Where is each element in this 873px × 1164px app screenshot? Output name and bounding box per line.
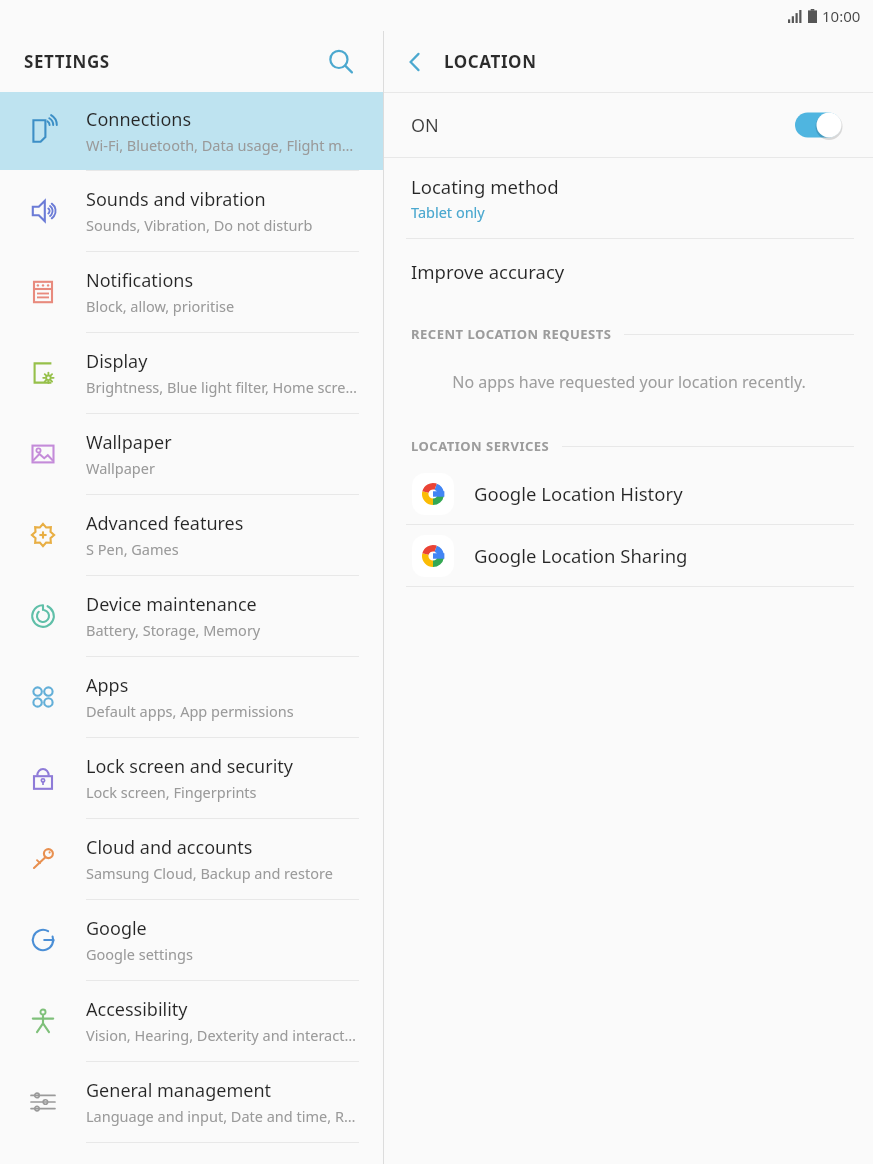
staticText: Notifications bbox=[86, 268, 194, 293]
button[interactable]: Locating method bbox=[384, 158, 873, 238]
button[interactable]: Google Location Sharing bbox=[384, 525, 873, 586]
button[interactable]: Wallpaper bbox=[0, 414, 383, 494]
button[interactable]: ON bbox=[384, 93, 873, 157]
staticText: LOCATION SERVICES bbox=[411, 437, 550, 455]
staticText: Accessibility bbox=[86, 997, 188, 1022]
staticText: Sounds, Vibration, Do not disturb bbox=[86, 215, 313, 235]
staticText: Locating method bbox=[411, 174, 559, 199]
button[interactable]: Apps bbox=[0, 657, 383, 737]
staticText: Lock screen, Fingerprints bbox=[86, 782, 257, 802]
staticText: Lock screen and security bbox=[86, 754, 293, 779]
button[interactable]: Google bbox=[0, 900, 383, 980]
staticText: Advanced features bbox=[86, 511, 244, 536]
button[interactable]: Advanced features bbox=[0, 495, 383, 575]
button[interactable]: Improve accuracy bbox=[384, 239, 873, 303]
staticText: Connections bbox=[86, 107, 192, 132]
staticText: Wi-Fi, Bluetooth, Data usage, Flight mod… bbox=[86, 135, 359, 155]
button[interactable]: Accessibility bbox=[0, 981, 383, 1061]
staticText: LOCATION bbox=[444, 50, 537, 73]
button[interactable]: Back bbox=[392, 39, 438, 85]
staticText: Samsung Cloud, Backup and restore bbox=[86, 863, 333, 883]
button[interactable]: Display bbox=[0, 333, 383, 413]
staticText: General management bbox=[86, 1078, 272, 1103]
button[interactable]: Google Location History bbox=[384, 463, 873, 524]
button[interactable]: Search bbox=[319, 40, 363, 84]
staticText: Sounds and vibration bbox=[86, 187, 266, 212]
staticText: Block, allow, prioritise bbox=[86, 296, 235, 316]
staticText: Google Location Sharing bbox=[474, 543, 688, 568]
staticText: Wallpaper bbox=[86, 458, 155, 478]
button[interactable]: Cloud and accounts bbox=[0, 819, 383, 899]
staticText: Brightness, Blue light filter, Home scre… bbox=[86, 377, 359, 397]
staticText: Language and input, Date and time, Res… bbox=[86, 1106, 359, 1126]
button[interactable]: Sounds and vibration bbox=[0, 171, 383, 251]
staticText: Default apps, App permissions bbox=[86, 701, 294, 721]
staticText: Wallpaper bbox=[86, 430, 172, 455]
staticText: Tablet only bbox=[411, 202, 485, 222]
staticText: Battery, Storage, Memory bbox=[86, 620, 261, 640]
staticText: Vision, Hearing, Dexterity and interacti… bbox=[86, 1025, 359, 1045]
button[interactable]: Notifications bbox=[0, 252, 383, 332]
button[interactable]: Lock screen and security bbox=[0, 738, 383, 818]
staticText: SETTINGS bbox=[24, 50, 110, 73]
staticText: 10:00 bbox=[822, 6, 861, 26]
staticText: Cloud and accounts bbox=[86, 835, 253, 860]
staticText: ON bbox=[411, 113, 439, 138]
staticText: RECENT LOCATION REQUESTS bbox=[411, 325, 612, 343]
staticText: Device maintenance bbox=[86, 592, 257, 617]
button[interactable]: General management bbox=[0, 1062, 383, 1142]
staticText: Apps bbox=[86, 673, 129, 698]
staticText: Improve accuracy bbox=[411, 259, 565, 284]
button[interactable]: Device maintenance bbox=[0, 576, 383, 656]
staticText: Google settings bbox=[86, 944, 193, 964]
staticText: S Pen, Games bbox=[86, 539, 179, 559]
staticText: No apps have requested your location rec… bbox=[452, 371, 806, 393]
staticText: Display bbox=[86, 349, 148, 374]
button[interactable]: Connections bbox=[0, 92, 383, 170]
staticText: Google Location History bbox=[474, 481, 683, 506]
staticText: Google bbox=[86, 916, 147, 941]
